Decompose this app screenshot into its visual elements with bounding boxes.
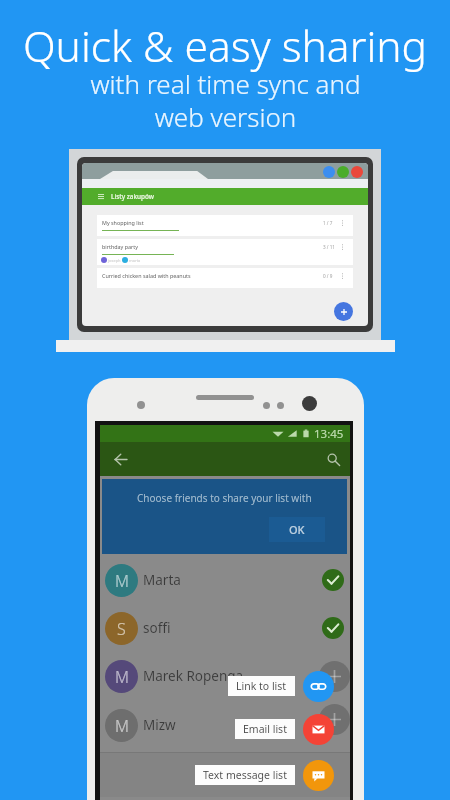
button[interactable]: Back [107,446,133,472]
staticText: Link to list [236,679,287,693]
button[interactable]: Email list [303,714,334,745]
button[interactable]: Link to list [236,676,287,696]
button[interactable]: Search [320,446,346,472]
button[interactable]: Curried chicken salad with peanuts [97,268,353,288]
button[interactable]: M [100,652,350,700]
button[interactable]: Link to list [303,671,334,702]
staticText: Email list [243,722,287,736]
staticText: S [117,618,126,640]
staticText: Choose friends to share your list with [137,491,312,505]
staticText: Text message list [203,768,287,782]
button[interactable]: Selected [322,617,344,639]
staticText: OK [289,522,305,537]
staticText: joseph [107,258,122,263]
staticText: Quick & easy sharing [23,17,427,75]
staticText: My shopping list [102,219,144,226]
staticText: 1 / 7 [323,220,333,226]
button[interactable]: Add list [334,302,353,321]
staticText: marta [128,258,142,263]
staticText: Marta [143,571,181,589]
staticText: Curried chicken salad with peanuts [102,272,191,279]
button[interactable]: Text message list [303,760,334,791]
staticText: with real time sync and web version [90,66,361,135]
staticText: Marek Ropenga [143,667,244,685]
button[interactable]: OK [269,517,325,542]
button[interactable]: M [100,556,350,604]
button[interactable]: Selected [322,569,344,591]
button[interactable]: birthday party [97,239,353,265]
staticText: 13:45 [314,426,344,442]
staticText: birthday party [102,243,138,250]
button[interactable]: Email list [243,719,287,739]
button[interactable]: Text message list [203,765,287,785]
button[interactable]: S [100,604,350,652]
staticText: M [115,570,129,592]
staticText: M [115,666,129,688]
button[interactable]: M [100,701,350,749]
staticText: 0 / 9 [323,273,333,279]
staticText: M [115,715,129,737]
staticText: Listy zakupów [111,192,154,201]
staticText: 3 / 11 [323,244,335,250]
button[interactable]: My shopping list [97,215,353,236]
staticText: soffi [143,619,171,637]
staticText: Mizw [143,716,176,734]
